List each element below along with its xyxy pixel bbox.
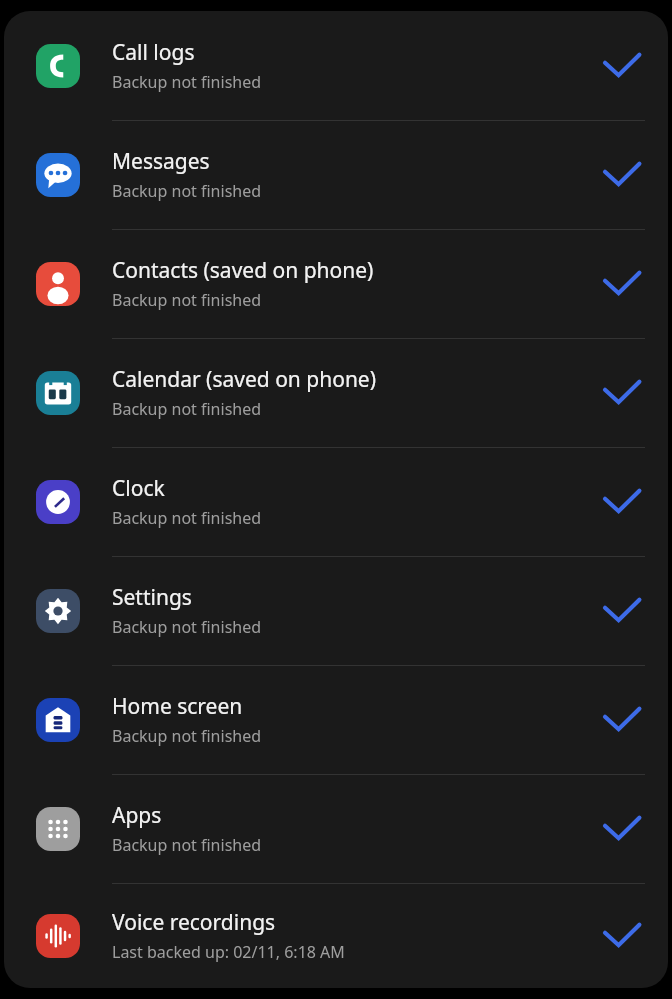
button[interactable]: Clock [4,447,668,556]
button[interactable]: Home screen [4,665,668,774]
button[interactable]: Selected Voice recordings [574,883,668,988]
button[interactable]: Selected Clock [574,447,668,556]
staticText: Apps [112,801,162,830]
button[interactable]: Contacts (saved on phone) [4,229,668,338]
button[interactable]: Selected Home screen [574,665,668,774]
button[interactable]: Selected Apps [574,774,668,883]
button[interactable]: Calendar (saved on phone) [4,338,668,447]
button[interactable]: Settings [4,556,668,665]
button[interactable]: Apps [4,774,668,883]
staticText: Backup not finished [112,398,262,420]
button[interactable]: Call logs [4,11,668,120]
button[interactable]: Selected Settings [574,556,668,665]
staticText: Backup not finished [112,71,262,93]
staticText: Backup not finished [112,289,262,311]
staticText: Voice recordings [112,908,276,937]
staticText: Messages [112,147,210,176]
staticText: Contacts (saved on phone) [112,256,374,285]
staticText: Backup not finished [112,180,262,202]
staticText: Backup not finished [112,616,262,638]
button[interactable]: Voice recordings [4,883,668,988]
staticText: Calendar (saved on phone) [112,365,377,394]
staticText: Backup not finished [112,834,262,856]
staticText: Settings [112,583,192,612]
staticText: Home screen [112,692,243,721]
staticText: Last backed up: 02/11, 6:18 AM [112,941,345,963]
button[interactable]: Selected Call logs [574,11,668,120]
button[interactable]: Selected Messages [574,120,668,229]
staticText: Backup not finished [112,507,262,529]
button[interactable]: Messages [4,120,668,229]
staticText: Clock [112,474,165,503]
staticText: Call logs [112,38,195,67]
button[interactable]: Selected Contacts (saved on phone) [574,229,668,338]
button[interactable]: Selected Calendar (saved on phone) [574,338,668,447]
staticText: Backup not finished [112,725,262,747]
